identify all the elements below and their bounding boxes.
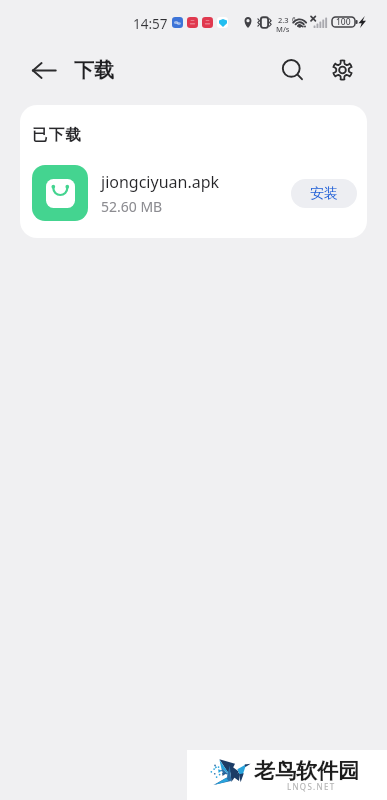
staticText: 6 xyxy=(292,15,296,24)
staticText: 52.60 MB xyxy=(101,197,163,216)
staticText: M/s xyxy=(276,24,290,34)
staticText: 已下载 xyxy=(32,125,83,145)
button[interactable]: 安装 xyxy=(291,179,357,208)
staticText: 14:57 xyxy=(133,15,168,33)
button[interactable]: Search xyxy=(272,49,313,90)
staticText: 2.3 xyxy=(278,15,289,25)
staticText: 100 xyxy=(336,16,351,28)
button[interactable]: Back xyxy=(24,50,64,90)
staticText: LNQS.NET xyxy=(287,781,336,792)
staticText: 安装 xyxy=(310,185,338,203)
staticText: 下载 xyxy=(74,58,114,83)
staticText: 老鸟软件园 xyxy=(254,758,359,784)
button[interactable]: jiongciyuan.apk xyxy=(20,158,367,228)
button[interactable]: Settings xyxy=(322,49,363,90)
staticText: jiongciyuan.apk xyxy=(101,171,220,193)
